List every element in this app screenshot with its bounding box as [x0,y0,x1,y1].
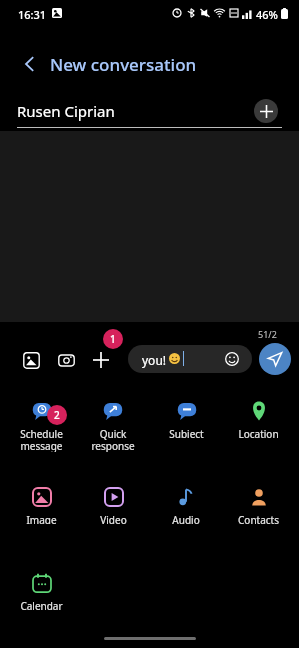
button[interactable]: Schedule message [6,400,76,452]
button[interactable]: Camera [52,346,80,374]
staticText: Location [238,427,279,438]
button[interactable]: Back [10,44,50,84]
staticText: 51/2 [258,328,277,340]
staticText: Rusen Ciprian [17,101,115,121]
staticText: Quick response [91,427,135,452]
button[interactable]: Calendar [6,572,76,610]
staticText: 1 [110,332,116,346]
staticText: New conversation [50,53,197,76]
staticText: Subject [169,427,204,438]
button[interactable]: More options [87,346,115,374]
button[interactable]: Send [259,343,291,375]
button[interactable]: Contacts [223,486,293,524]
button[interactable]: Location [223,400,293,438]
button[interactable]: Add recipient [254,99,278,123]
staticText: Schedule message [20,427,63,452]
staticText: Contacts [238,513,279,524]
button[interactable]: Image [6,486,76,524]
button[interactable]: Video [78,486,148,524]
button[interactable]: Subject [151,400,221,438]
staticText: Image [26,513,57,524]
staticText: Video [100,513,127,524]
staticText: 2 [54,408,60,422]
staticText: 16:31 [18,7,47,22]
staticText: Calendar [20,599,63,610]
staticText: you! [142,352,167,368]
button[interactable]: Quick response [78,400,148,452]
button[interactable]: Gallery [17,346,45,374]
staticText: Audio [172,513,200,524]
button[interactable]: Audio [151,486,221,524]
staticText: 46% [256,7,278,22]
button[interactable]: Emoji [223,350,241,368]
button[interactable]: you! [128,345,252,373]
